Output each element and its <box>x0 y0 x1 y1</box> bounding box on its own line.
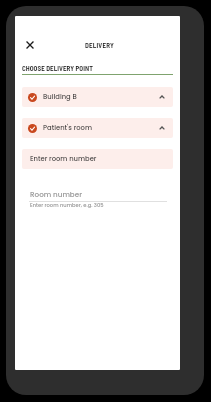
staticText: DELIVERY <box>17 41 180 49</box>
button[interactable]: Building B <box>22 87 173 107</box>
staticText: Patient's room <box>43 123 93 133</box>
button[interactable]: Close <box>21 36 39 54</box>
staticText: Enter room number, e.g. 305 <box>30 202 104 209</box>
button[interactable]: Enter room number <box>22 149 173 169</box>
button[interactable]: Patient's room <box>22 118 173 138</box>
staticText: Room number <box>30 189 82 199</box>
staticText: Building B <box>43 92 77 102</box>
staticText: CHOOSE DELIVERY POINT <box>22 64 93 72</box>
staticText: Enter room number <box>30 154 97 164</box>
